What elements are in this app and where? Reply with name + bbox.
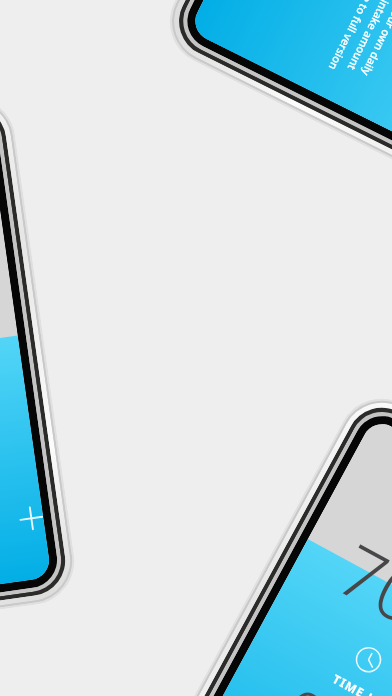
staticText: *Upgrade to full version — [313, 0, 392, 99]
staticText: water intake amount — [328, 0, 392, 106]
staticText: TIME LEFT — [330, 670, 392, 696]
staticText: 70 — [322, 520, 392, 646]
staticText: 05 — [269, 668, 369, 696]
staticText: Enter your own daily — [341, 0, 392, 113]
button[interactable]: Add water — [10, 498, 46, 540]
